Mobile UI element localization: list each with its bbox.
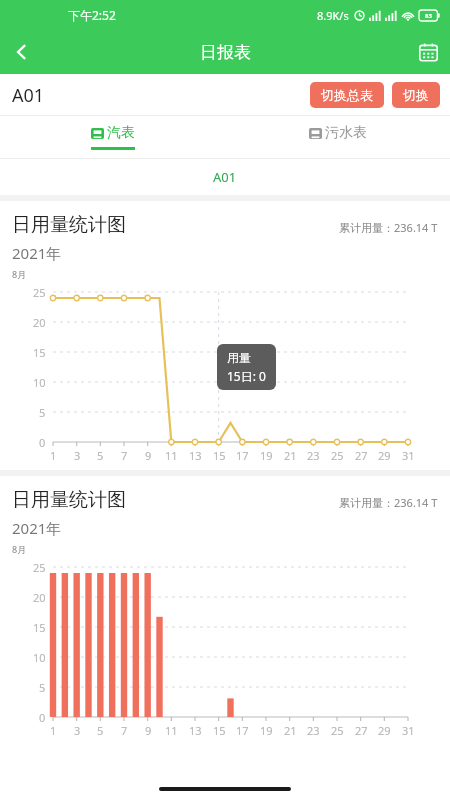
button[interactable]: 汽表: [0, 116, 225, 158]
staticText: 31: [402, 448, 415, 463]
button[interactable]: Calendar: [406, 30, 450, 74]
staticText: 83: [425, 12, 432, 20]
staticText: 29: [378, 723, 391, 738]
staticText: 1: [50, 448, 57, 463]
staticText: 1: [50, 723, 57, 738]
staticText: 15: [33, 620, 46, 635]
staticText: 23: [307, 448, 320, 463]
staticText: 19: [260, 723, 273, 738]
staticText: 15: [213, 723, 226, 738]
staticText: 15: [33, 345, 46, 360]
staticText: 5: [97, 723, 104, 738]
staticText: 9: [145, 448, 152, 463]
staticText: 2021年: [12, 243, 62, 263]
staticText: A01: [213, 168, 237, 186]
staticText: 19: [260, 448, 273, 463]
staticText: 11: [165, 448, 178, 463]
staticText: A01: [12, 83, 45, 108]
staticText: 23: [307, 723, 320, 738]
button[interactable]: 切换: [392, 82, 440, 108]
staticText: 21: [284, 448, 297, 463]
staticText: 13: [189, 723, 202, 738]
staticText: 25: [33, 560, 46, 575]
staticText: 切换总表: [321, 87, 373, 103]
button[interactable]: 污水表: [225, 116, 450, 158]
staticText: 汽表: [107, 124, 135, 142]
staticText: 21: [284, 723, 297, 738]
staticText: 11: [165, 723, 178, 738]
staticText: 7: [121, 448, 128, 463]
staticText: 8月: [12, 543, 27, 555]
staticText: 17: [236, 448, 249, 463]
staticText: 切换: [403, 87, 429, 103]
staticText: 3: [74, 723, 81, 738]
staticText: 下午2:52: [68, 7, 116, 23]
staticText: 31: [402, 723, 415, 738]
staticText: 污水表: [325, 124, 367, 142]
staticText: 用量: [227, 350, 251, 365]
staticText: 日报表: [200, 42, 251, 63]
staticText: 15: [213, 448, 226, 463]
staticText: 7: [121, 723, 128, 738]
staticText: 25: [33, 285, 46, 300]
staticText: 5: [39, 405, 46, 420]
button[interactable]: 切换总表: [310, 82, 384, 108]
staticText: 25: [331, 448, 344, 463]
staticText: 5: [97, 448, 104, 463]
staticText: 5: [39, 680, 46, 695]
staticText: 20: [33, 315, 46, 330]
staticText: 10: [33, 650, 46, 665]
staticText: 29: [378, 448, 391, 463]
staticText: 17: [236, 723, 249, 738]
staticText: 15日: 0: [227, 368, 266, 384]
staticText: 27: [355, 448, 368, 463]
staticText: 20: [33, 590, 46, 605]
staticText: 日用量统计图: [12, 213, 126, 237]
staticText: 2021年: [12, 518, 62, 538]
staticText: 8.9K/s: [317, 8, 349, 23]
staticText: 累计用量：236.14 T: [339, 495, 438, 510]
staticText: 10: [33, 375, 46, 390]
button[interactable]: Back: [0, 30, 44, 74]
staticText: 日用量统计图: [12, 488, 126, 512]
staticText: 0: [39, 710, 46, 725]
staticText: 27: [355, 723, 368, 738]
staticText: 累计用量：236.14 T: [339, 220, 438, 235]
staticText: 25: [331, 723, 344, 738]
staticText: 8月: [12, 268, 27, 280]
staticText: 0: [39, 435, 46, 450]
staticText: 13: [189, 448, 202, 463]
staticText: 3: [74, 448, 81, 463]
staticText: 9: [145, 723, 152, 738]
